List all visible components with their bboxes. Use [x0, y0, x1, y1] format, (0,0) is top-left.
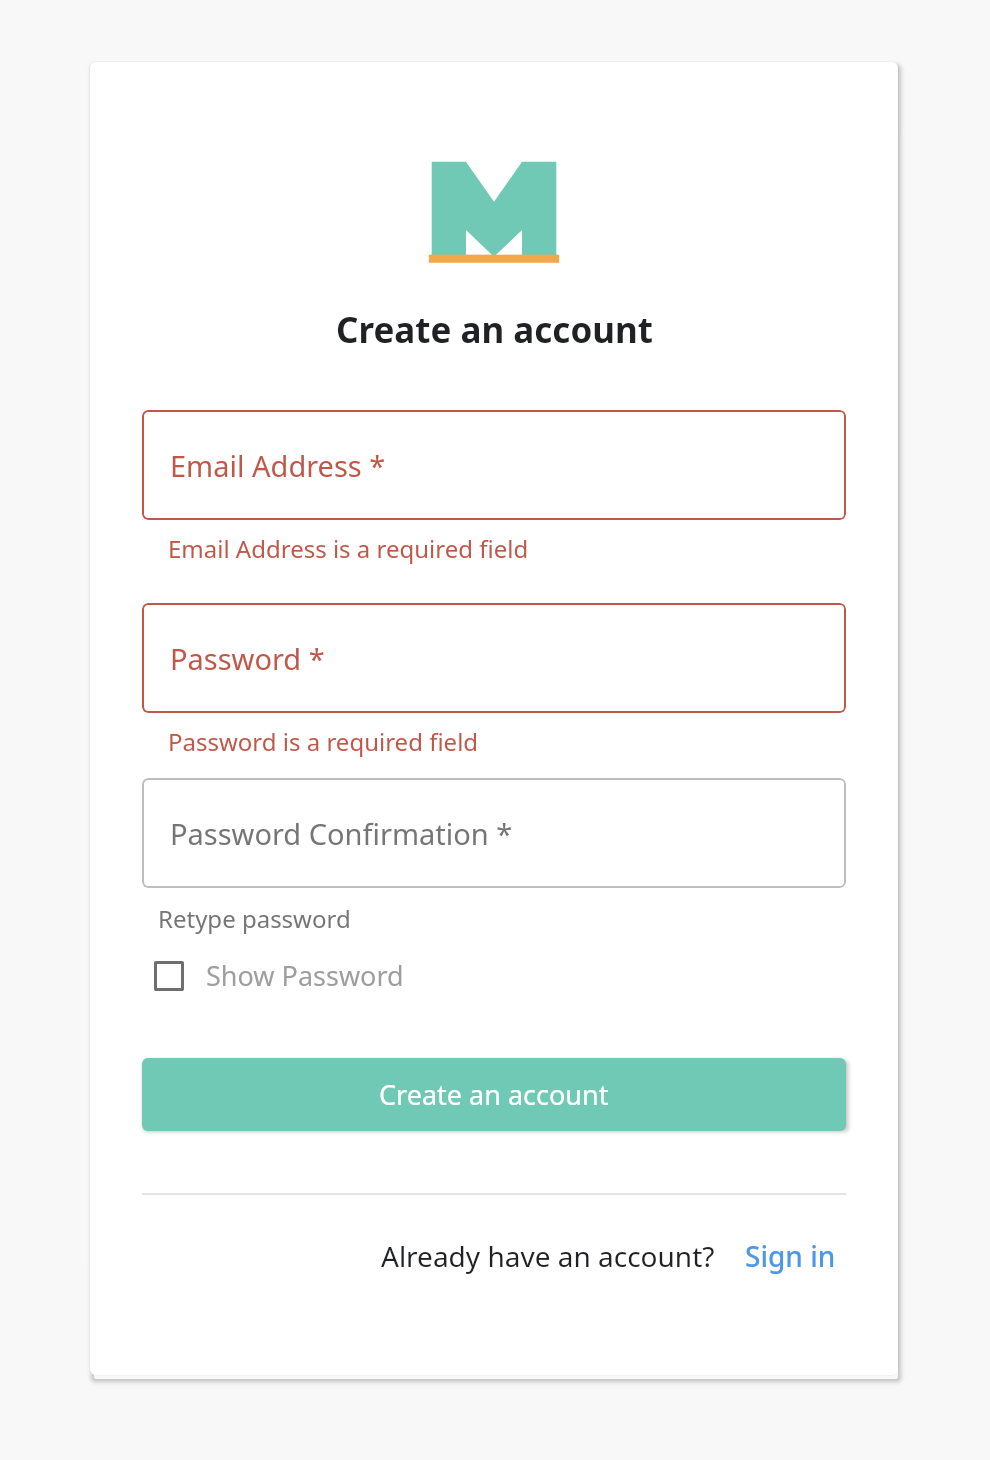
staticText: Sign in — [745, 1237, 836, 1275]
button[interactable]: Email Address * — [142, 410, 846, 520]
staticText: Create an account — [379, 1076, 609, 1113]
staticText: Create an account — [336, 306, 653, 354]
staticText: Email Address is a required field — [168, 532, 529, 565]
button[interactable]: Show Password — [150, 953, 408, 998]
staticText: Email Address * — [170, 446, 386, 485]
button[interactable]: Password * — [142, 603, 846, 713]
staticText: Show Password — [206, 957, 404, 994]
button[interactable]: Create an account — [142, 1058, 846, 1131]
button[interactable]: Password Confirmation * — [142, 778, 846, 888]
staticText: Already have an account? — [381, 1237, 715, 1275]
staticText: Password is a required field — [168, 725, 479, 758]
staticText: Retype password — [158, 902, 351, 935]
staticText: Password Confirmation * — [170, 814, 513, 853]
staticText: Password * — [170, 639, 325, 678]
other: App logo — [424, 158, 564, 266]
button[interactable]: Sign in — [743, 1233, 838, 1279]
